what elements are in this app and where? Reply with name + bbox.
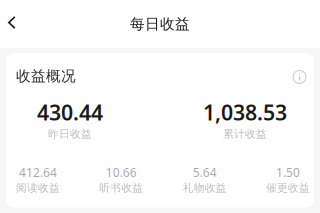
- staticText: 1.50: [276, 164, 300, 180]
- button[interactable]: Info: [293, 68, 306, 83]
- staticText: 收益概况: [16, 67, 76, 85]
- staticText: 1,038.53: [203, 98, 287, 126]
- staticText: 阅读收益: [16, 181, 60, 194]
- staticText: 430.44: [37, 98, 103, 126]
- button[interactable]: 412.64: [16, 164, 60, 194]
- staticText: 每日收益: [130, 15, 190, 33]
- staticText: 10.66: [106, 164, 137, 180]
- staticText: 听书收益: [99, 181, 143, 194]
- button[interactable]: 1,038.53: [203, 98, 287, 140]
- staticText: 412.64: [19, 164, 57, 180]
- staticText: 礼物收益: [183, 181, 227, 194]
- button[interactable]: 1.50: [266, 164, 310, 194]
- button[interactable]: 430.44: [37, 98, 103, 140]
- staticText: 昨日收益: [48, 127, 92, 140]
- button[interactable]: 5.64: [183, 164, 227, 194]
- button[interactable]: 10.66: [99, 164, 143, 194]
- staticText: 5.64: [193, 164, 217, 180]
- button[interactable]: Back: [0, 0, 29, 48]
- staticText: 催更收益: [266, 181, 310, 194]
- staticText: 累计收益: [223, 127, 267, 140]
